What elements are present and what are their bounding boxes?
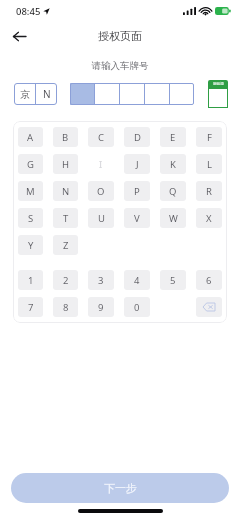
staticText: O xyxy=(97,185,105,198)
staticText: E xyxy=(170,131,176,144)
staticText: 请输入车牌号 xyxy=(0,60,240,72)
button[interactable]: I xyxy=(88,154,114,174)
staticText: 9 xyxy=(98,301,104,314)
button[interactable]: X xyxy=(196,208,222,228)
staticText: D xyxy=(134,131,141,144)
staticText: 5 xyxy=(170,274,176,287)
staticText: 4 xyxy=(134,274,140,287)
button[interactable]: Z xyxy=(53,235,78,255)
staticText: T xyxy=(63,212,69,225)
button[interactable]: V xyxy=(124,208,150,228)
staticText: U xyxy=(98,212,105,225)
staticText: S xyxy=(28,212,34,225)
button[interactable]: R xyxy=(196,181,222,201)
staticText: Y xyxy=(28,239,34,252)
staticText: W xyxy=(169,212,178,225)
button[interactable]: 5 xyxy=(160,270,186,290)
button[interactable]: F xyxy=(196,127,222,147)
staticText: P xyxy=(134,185,140,198)
button[interactable]: 4 xyxy=(124,270,150,290)
button[interactable]: H xyxy=(53,154,78,174)
button[interactable]: 8 xyxy=(53,297,78,317)
button[interactable]: 6 xyxy=(196,270,222,290)
button[interactable]: 0 xyxy=(124,297,150,317)
button[interactable]: 新能源 xyxy=(208,80,228,108)
staticText: N xyxy=(43,87,51,101)
button[interactable]: W xyxy=(160,208,186,228)
button[interactable]: 2 xyxy=(53,270,78,290)
staticText: K xyxy=(170,158,176,171)
staticText: 8 xyxy=(63,301,69,314)
button[interactable]: O xyxy=(88,181,114,201)
staticText: 3 xyxy=(98,274,104,287)
button[interactable]: S xyxy=(18,208,43,228)
button[interactable]: 下一步 xyxy=(11,473,229,503)
button[interactable]: P xyxy=(124,181,150,201)
staticText: H xyxy=(62,158,70,171)
button[interactable]: M xyxy=(18,181,43,201)
button[interactable]: 1 xyxy=(18,270,43,290)
button[interactable]: D xyxy=(124,127,150,147)
button[interactable]: U xyxy=(88,208,114,228)
button[interactable]: E xyxy=(160,127,186,147)
button[interactable]: 3 xyxy=(88,270,114,290)
button[interactable]: 7 xyxy=(18,297,43,317)
staticText: L xyxy=(207,158,212,171)
staticText: 0 xyxy=(134,301,140,314)
staticText: M xyxy=(26,185,35,198)
button[interactable]: 9 xyxy=(88,297,114,317)
button[interactable]: Back xyxy=(6,23,32,49)
button[interactable]: Q xyxy=(160,181,186,201)
staticText: I xyxy=(99,158,103,171)
staticText: G xyxy=(27,158,34,171)
staticText: 京 xyxy=(20,88,30,101)
staticText: Z xyxy=(63,239,69,252)
button[interactable]: K xyxy=(160,154,186,174)
staticText: A xyxy=(27,131,34,144)
button[interactable]: T xyxy=(53,208,78,228)
staticText: 下一步 xyxy=(104,481,137,495)
button[interactable]: B xyxy=(53,127,78,147)
button[interactable]: Y xyxy=(18,235,43,255)
staticText: J xyxy=(136,158,139,171)
staticText: X xyxy=(206,212,212,225)
button[interactable]: C xyxy=(88,127,114,147)
staticText: C xyxy=(98,131,105,144)
staticText: 1 xyxy=(28,274,34,287)
staticText: 2 xyxy=(63,274,69,287)
staticText: 7 xyxy=(28,301,34,314)
button[interactable]: 京 xyxy=(14,83,57,105)
staticText: 新能源 xyxy=(213,82,224,87)
button[interactable]: Backspace xyxy=(196,297,222,317)
staticText: R xyxy=(206,185,212,198)
staticText: 08:45 xyxy=(16,5,41,18)
staticText: 6 xyxy=(206,274,212,287)
button[interactable]: G xyxy=(18,154,43,174)
staticText: N xyxy=(62,185,70,198)
button[interactable]: L xyxy=(196,154,222,174)
button[interactable] xyxy=(70,83,194,105)
button[interactable]: N xyxy=(53,181,78,201)
staticText: Q xyxy=(169,185,177,198)
staticText: 授权页面 xyxy=(98,29,142,43)
button[interactable]: A xyxy=(18,127,43,147)
staticText: F xyxy=(207,131,212,144)
staticText: B xyxy=(62,131,69,144)
button[interactable]: J xyxy=(124,154,150,174)
staticText: V xyxy=(134,212,140,225)
